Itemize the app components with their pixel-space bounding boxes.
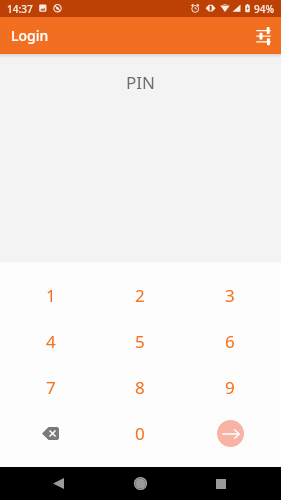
staticText: 3 — [225, 284, 235, 307]
staticText: 1 — [46, 284, 56, 307]
button[interactable]: 2 — [95, 272, 185, 318]
button[interactable]: Home — [120, 467, 161, 500]
staticText: 14:37 — [7, 2, 33, 16]
button[interactable]: PIN — [0, 54, 281, 98]
staticText: PIN — [126, 71, 155, 94]
button[interactable]: 7 — [6, 364, 95, 410]
staticText: 8 — [135, 376, 145, 399]
button[interactable]: 9 — [185, 364, 275, 410]
button[interactable]: 0 — [95, 410, 185, 456]
button[interactable]: Submit — [217, 420, 244, 447]
button[interactable]: 5 — [95, 318, 185, 364]
button[interactable]: 8 — [95, 364, 185, 410]
button[interactable]: Back — [38, 467, 79, 500]
staticText: 94% — [254, 2, 274, 16]
button[interactable]: 6 — [185, 318, 275, 364]
button[interactable]: Recents — [200, 467, 241, 500]
button[interactable]: 4 — [6, 318, 95, 364]
staticText: 9 — [225, 376, 235, 399]
button[interactable]: 1 — [6, 272, 95, 318]
staticText: 5 — [135, 330, 145, 353]
staticText: Login — [11, 26, 49, 45]
staticText: 6 — [225, 330, 235, 353]
staticText: 0 — [135, 422, 145, 445]
button[interactable]: 3 — [185, 272, 275, 318]
button[interactable]: Settings — [248, 21, 278, 51]
button[interactable]: Backspace — [6, 410, 95, 456]
staticText: 2 — [135, 284, 145, 307]
staticText: 4 — [46, 330, 56, 353]
staticText: 7 — [46, 376, 56, 399]
